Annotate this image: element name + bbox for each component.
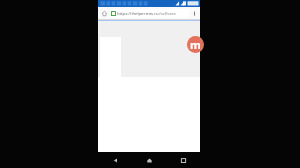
button[interactable]: Home: [100, 9, 109, 18]
button[interactable]: Home: [132, 152, 166, 168]
staticText: m: [190, 37, 201, 52]
staticText: https://ihelper.mts.ru: [117, 11, 159, 17]
button[interactable]: Recent apps: [166, 152, 200, 168]
button[interactable]: https://ihelper.mts.ru: [110, 9, 189, 18]
button[interactable]: Back: [98, 152, 132, 168]
staticText: /selfcare: [159, 11, 176, 17]
button[interactable]: More options: [190, 9, 198, 17]
button[interactable]: MTS logo: [187, 36, 204, 53]
